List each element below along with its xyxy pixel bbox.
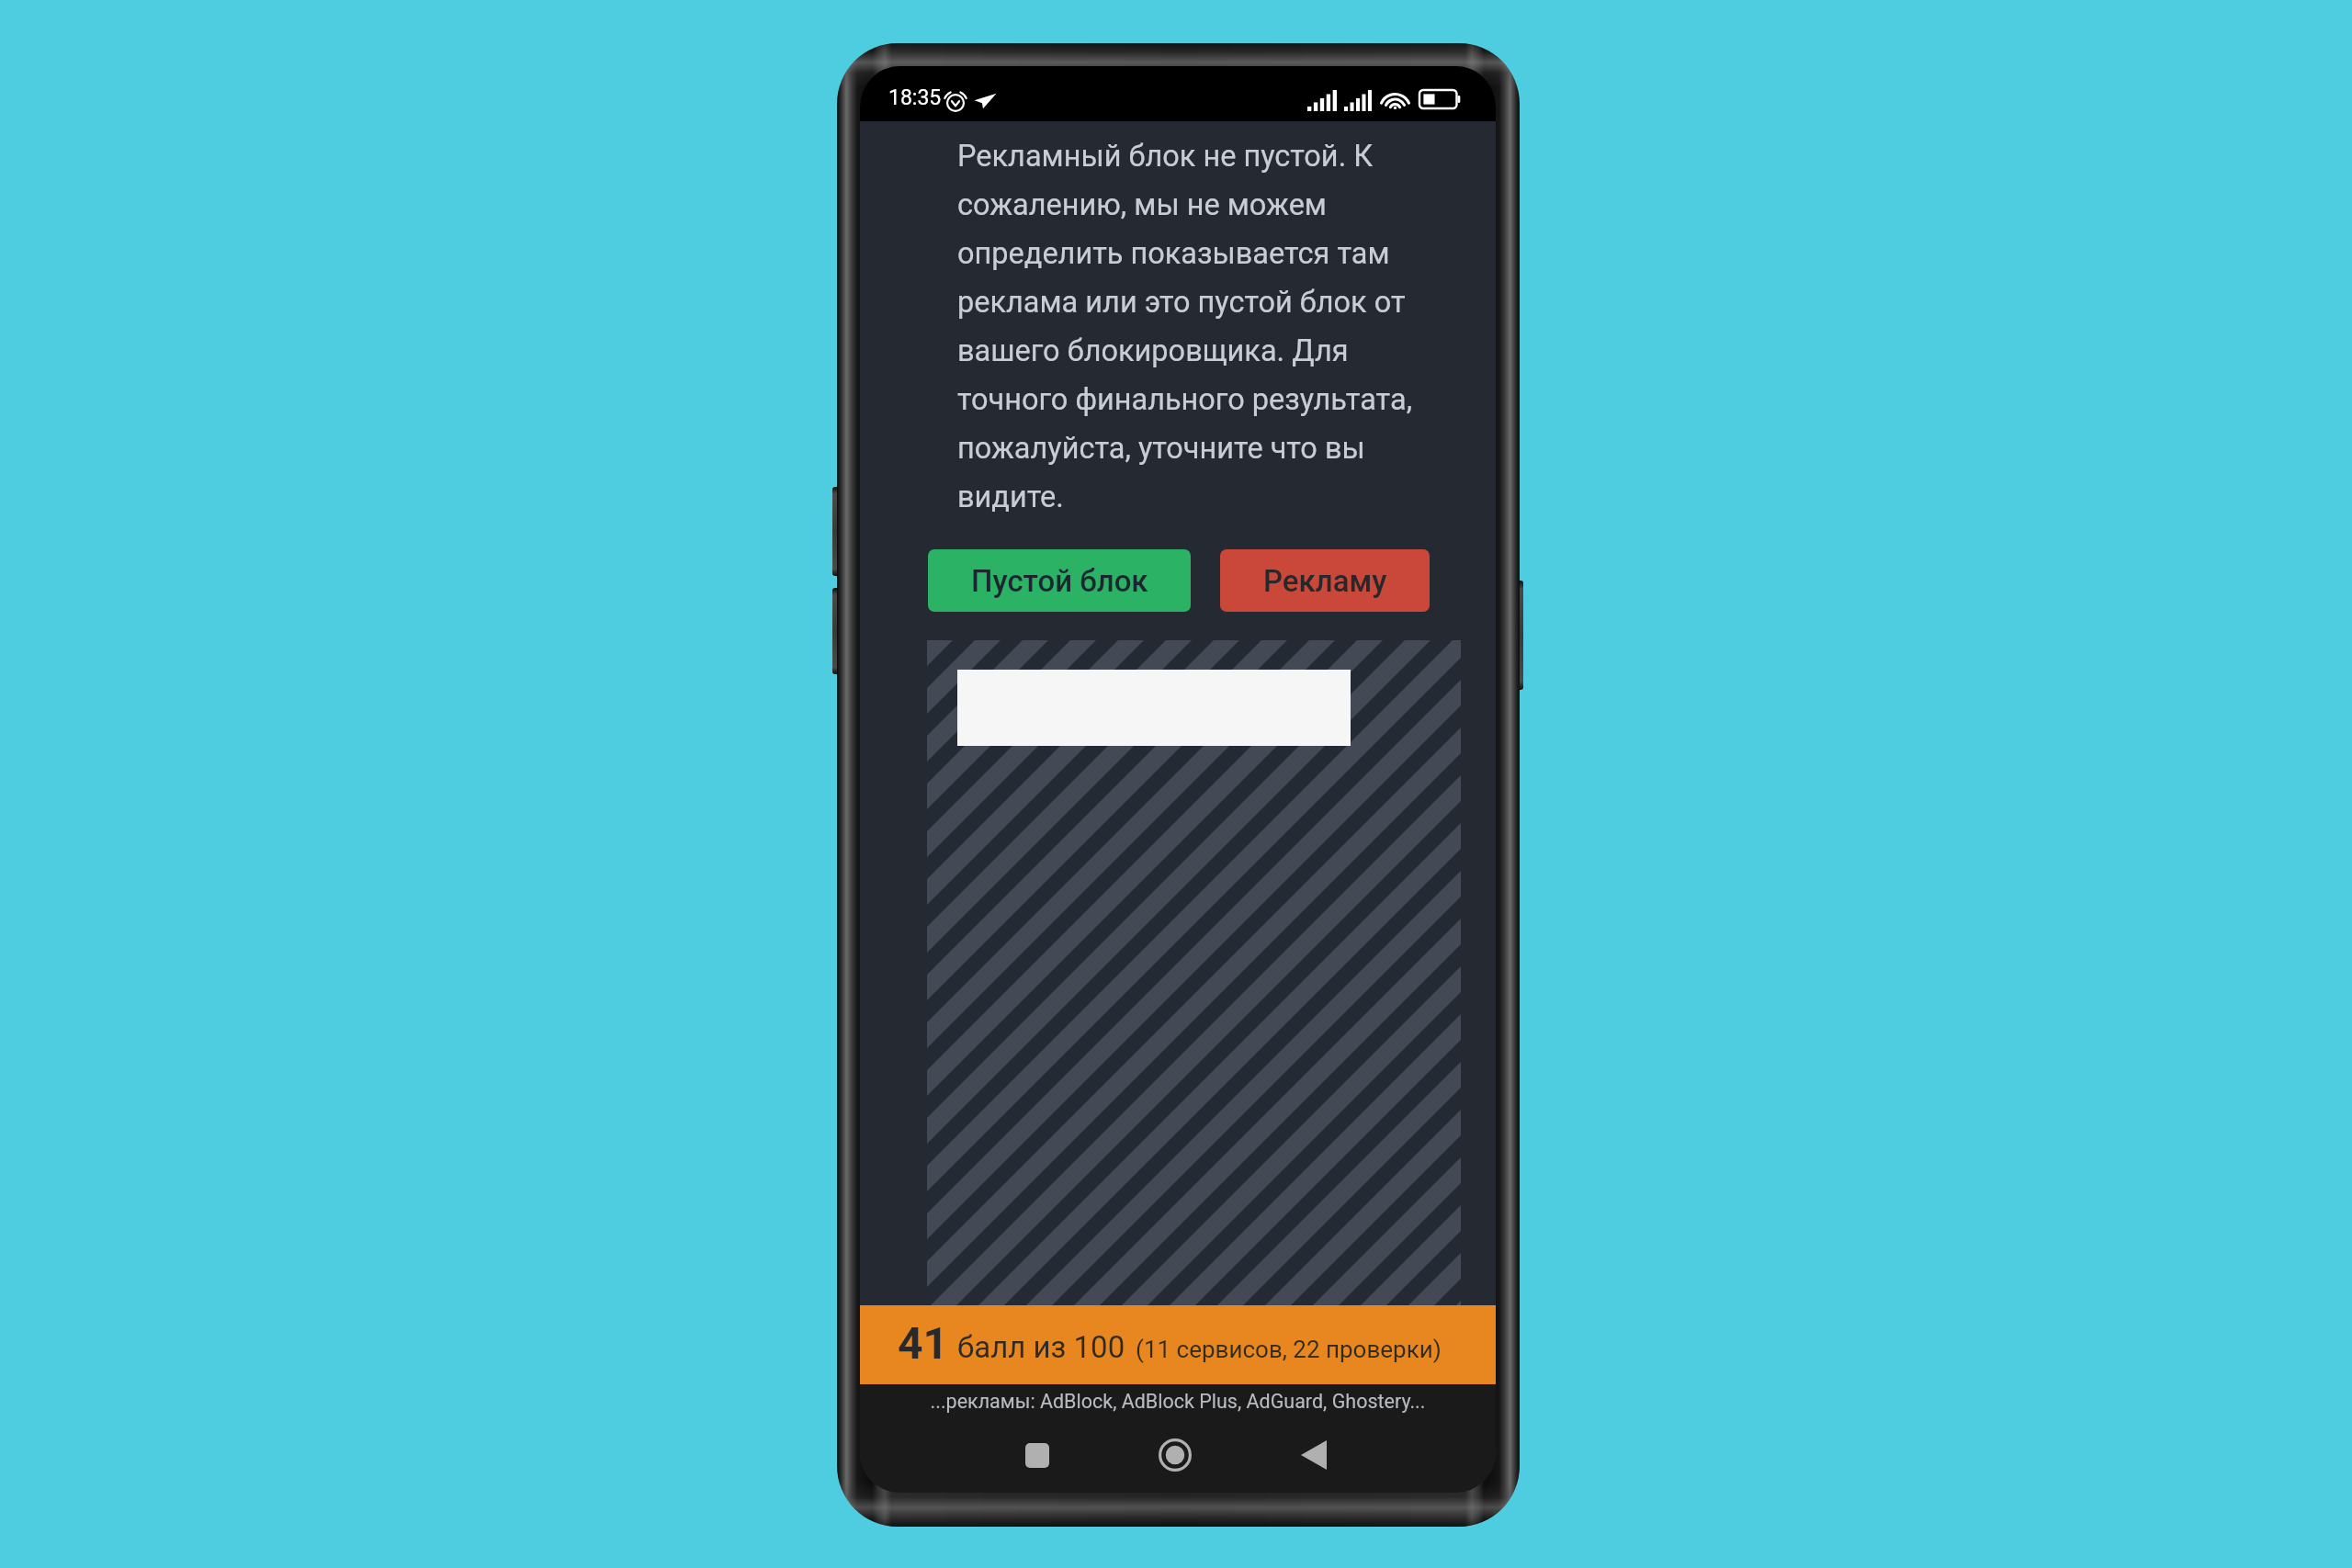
- staticText: ...рекламы: AdBlock, AdBlock Plus, AdGua…: [860, 1390, 1496, 1413]
- button[interactable]: Back: [1268, 1409, 1360, 1493]
- staticText: балл из 100: [957, 1329, 1125, 1365]
- staticText: Пустой блок: [971, 563, 1148, 599]
- button[interactable]: Рекламу: [1220, 549, 1430, 612]
- button[interactable]: Пустой блок: [928, 549, 1191, 612]
- staticText: Рекламу: [1263, 563, 1387, 599]
- staticText: Рекламный блок не пустой. К сожалению, м…: [957, 139, 1441, 514]
- button[interactable]: Home: [1129, 1409, 1221, 1493]
- button[interactable]: Recents: [991, 1409, 1083, 1493]
- staticText: (11 сервисов, 22 проверки): [1136, 1336, 1442, 1363]
- staticText: 41: [898, 1317, 949, 1369]
- staticText: 18:35: [888, 85, 942, 110]
